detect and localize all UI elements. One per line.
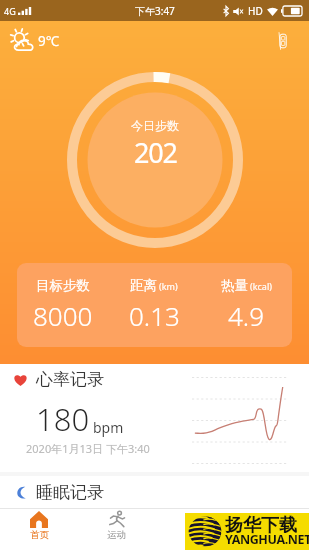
staticText: 202 [134,134,177,171]
staticText: 4.9 [228,298,265,333]
button[interactable]: 心率记录 [0,364,309,472]
staticText: 下午3:47 [135,4,175,18]
button[interactable]: Device [269,27,297,55]
button[interactable]: 目标步数 [17,263,292,347]
staticText: 扬华下载 [225,514,297,537]
staticText: 热量 [221,277,248,294]
staticText: (km) [159,280,178,292]
staticText: 2020年1月13日 下午3:40 [26,441,150,456]
staticText: (kcal) [250,280,272,292]
staticText: 8000 [33,298,93,333]
staticText: 睡眠记录 [36,482,104,503]
staticText: 180 [36,398,90,440]
staticText: 目标步数 [36,277,90,294]
staticText: YANGHUA.NET [225,531,309,548]
button[interactable]: 9℃ [5,26,63,56]
staticText: 心率记录 [36,369,104,390]
staticText: 距离 [130,277,157,294]
staticText: 4G [4,5,16,17]
button[interactable]: 睡眠记录 [0,476,309,508]
staticText: 首页 [30,529,49,541]
staticText: 今日步数 [131,118,179,133]
button[interactable]: 运动 [78,508,155,550]
staticText: HD [248,4,263,18]
button[interactable]: Today steps 202 [67,72,243,248]
staticText: 9℃ [38,32,60,50]
staticText: bpm [93,418,124,437]
staticText: 运动 [107,529,126,541]
button[interactable]: 首页 [0,508,78,550]
staticText: 0.13 [129,298,180,333]
